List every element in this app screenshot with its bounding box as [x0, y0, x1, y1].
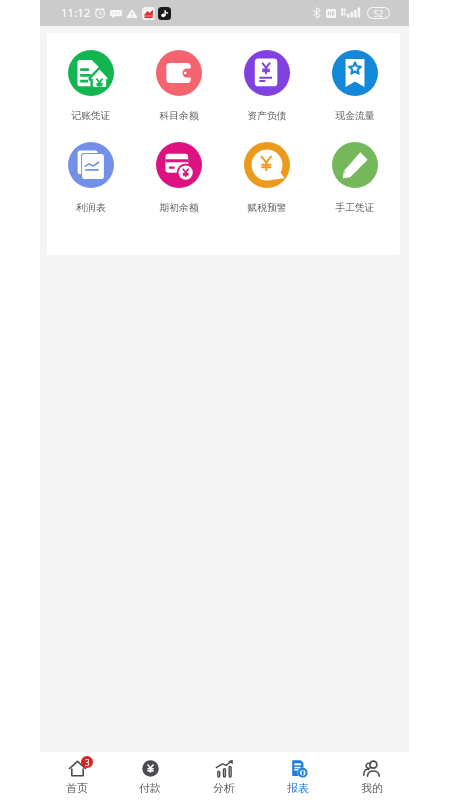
button[interactable]: 期初余额: [135, 142, 223, 214]
button[interactable]: 3: [40, 752, 113, 800]
button[interactable]: 记账凭证: [47, 50, 135, 122]
staticText: 期初余额: [159, 202, 199, 214]
button[interactable]: 分析: [187, 752, 261, 800]
button[interactable]: 手工凭证: [311, 142, 399, 214]
button[interactable]: 付款: [113, 752, 187, 800]
staticText: 记账凭证: [71, 110, 111, 122]
button[interactable]: 资产负债: [223, 50, 311, 122]
staticText: 首页: [66, 781, 88, 795]
staticText: 科目余额: [159, 110, 199, 122]
staticText: 我的: [361, 781, 383, 795]
staticText: 利润表: [76, 202, 106, 214]
staticText: 手工凭证: [335, 202, 375, 214]
staticText: 3: [85, 757, 90, 768]
button[interactable]: 报表: [261, 752, 335, 800]
staticText: 赋税预警: [247, 202, 287, 214]
staticText: 资产负债: [247, 110, 287, 122]
button[interactable]: 利润表: [47, 142, 135, 214]
staticText: 付款: [139, 781, 161, 795]
staticText: 报表: [287, 781, 309, 795]
button[interactable]: 赋税预警: [223, 142, 311, 214]
staticText: 现金流量: [335, 110, 375, 122]
button[interactable]: 现金流量: [311, 50, 399, 122]
button[interactable]: 科目余额: [135, 50, 223, 122]
staticText: 52: [374, 8, 384, 18]
staticText: 11:12: [61, 5, 91, 21]
button[interactable]: 我的: [335, 752, 409, 800]
staticText: 分析: [213, 781, 235, 795]
